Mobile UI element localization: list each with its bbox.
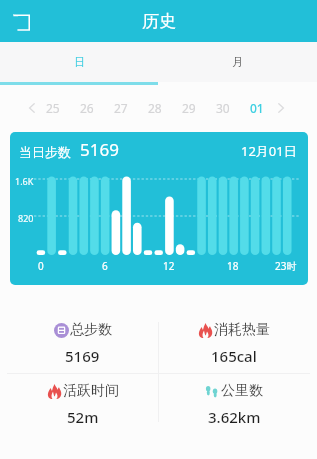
button[interactable]: 26: [70, 94, 104, 122]
button[interactable]: 总步数: [7, 313, 158, 373]
staticText: 52m: [67, 407, 99, 427]
button[interactable]: 月: [158, 42, 317, 82]
button[interactable]: Previous day: [24, 100, 40, 116]
button[interactable]: 日: [0, 42, 158, 82]
staticText: 820: [18, 212, 34, 224]
button[interactable]: 公里数: [158, 374, 310, 434]
button[interactable]: 28: [138, 94, 172, 122]
button[interactable]: 消耗热量: [158, 313, 310, 373]
staticText: 月: [232, 55, 243, 69]
staticText: 历史: [142, 11, 176, 32]
staticText: 活跃时间: [63, 382, 119, 400]
button[interactable]: 01: [240, 94, 274, 122]
staticText: 12: [163, 259, 175, 273]
button[interactable]: 30: [206, 94, 240, 122]
staticText: 5169: [65, 346, 100, 366]
button[interactable]: Back: [9, 10, 33, 34]
staticText: 01: [250, 100, 264, 116]
staticText: 28: [148, 100, 162, 116]
staticText: 23时: [275, 259, 297, 273]
staticText: 6: [102, 259, 108, 273]
staticText: 3.62km: [208, 407, 261, 427]
staticText: 当日步数: [19, 144, 71, 160]
button[interactable]: 活跃时间: [7, 374, 158, 434]
button[interactable]: Next day: [273, 100, 289, 116]
staticText: 26: [80, 100, 94, 116]
staticText: 12月01日: [241, 142, 297, 160]
staticText: 27: [114, 100, 128, 116]
staticText: 消耗热量: [214, 321, 270, 339]
button[interactable]: 25: [36, 94, 70, 122]
staticText: 165cal: [211, 346, 257, 366]
staticText: 日: [74, 55, 85, 69]
staticText: 18: [227, 259, 239, 273]
staticText: 29: [182, 100, 196, 116]
staticText: 总步数: [70, 321, 112, 339]
staticText: 5169: [80, 138, 119, 161]
staticText: 0: [38, 259, 44, 273]
button[interactable]: 29: [172, 94, 206, 122]
staticText: 1.6K: [15, 175, 34, 187]
staticText: 30: [216, 100, 230, 116]
button[interactable]: 27: [104, 94, 138, 122]
staticText: 25: [46, 100, 60, 116]
staticText: 公里数: [221, 382, 263, 400]
